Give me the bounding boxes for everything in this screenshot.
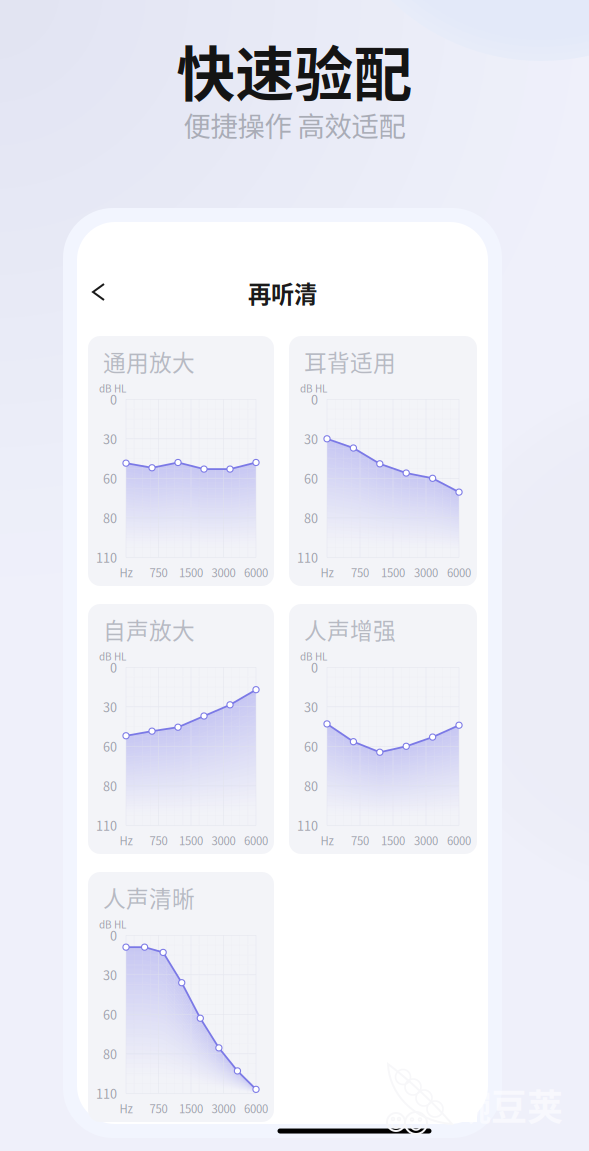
staticText: 再听清 <box>248 276 317 310</box>
staticText: Hz <box>119 832 132 848</box>
staticText: 80 <box>103 1045 117 1063</box>
staticText: 750 <box>351 832 369 848</box>
button[interactable]: 耳背适用 <box>289 336 477 586</box>
button[interactable]: 人声清晰 <box>88 872 274 1122</box>
staticText: 60 <box>103 737 117 755</box>
staticText: dB HL <box>300 649 327 663</box>
button[interactable]: 自声放大 <box>88 604 274 854</box>
staticText: 1500 <box>381 564 405 580</box>
staticText: 6000 <box>244 832 268 848</box>
staticText: 6000 <box>447 832 471 848</box>
staticText: 3000 <box>414 832 438 848</box>
staticText: 3000 <box>211 832 235 848</box>
staticText: 60 <box>304 469 318 487</box>
staticText: 1500 <box>179 832 203 848</box>
staticText: dB HL <box>99 381 126 395</box>
staticText: 自声放大 <box>103 613 195 646</box>
staticText: 30 <box>304 430 318 448</box>
staticText: 0 <box>311 658 318 676</box>
staticText: 80 <box>304 777 318 795</box>
button[interactable]: Back <box>91 276 125 310</box>
staticText: 耳背适用 <box>304 345 396 378</box>
staticText: 750 <box>149 832 167 848</box>
staticText: 快速验配 <box>176 28 412 113</box>
staticText: 1500 <box>179 1100 203 1116</box>
staticText: 110 <box>297 816 318 834</box>
staticText: 豌豆荚 <box>455 1079 563 1131</box>
staticText: 80 <box>103 777 117 795</box>
staticText: 1500 <box>381 832 405 848</box>
staticText: 3000 <box>211 564 235 580</box>
staticText: dB HL <box>99 917 126 931</box>
staticText: 通用放大 <box>103 345 195 378</box>
staticText: 人声清晰 <box>103 881 195 914</box>
staticText: dB HL <box>300 381 327 395</box>
staticText: 人声增强 <box>304 613 396 646</box>
staticText: Hz <box>119 564 132 580</box>
staticText: 750 <box>149 564 167 580</box>
staticText: dB HL <box>99 649 126 663</box>
staticText: Hz <box>320 564 333 580</box>
staticText: 30 <box>103 698 117 716</box>
staticText: 80 <box>103 509 117 527</box>
staticText: 0 <box>110 926 117 944</box>
staticText: 110 <box>297 548 318 566</box>
staticText: 6000 <box>244 1100 268 1116</box>
staticText: 30 <box>103 430 117 448</box>
staticText: 1500 <box>179 564 203 580</box>
staticText: 3000 <box>414 564 438 580</box>
staticText: 便捷操作 高效适配 <box>183 105 405 145</box>
staticText: 0 <box>110 390 117 408</box>
staticText: 60 <box>304 737 318 755</box>
staticText: Hz <box>320 832 333 848</box>
staticText: 60 <box>103 469 117 487</box>
staticText: 60 <box>103 1005 117 1023</box>
staticText: 30 <box>304 698 318 716</box>
staticText: 0 <box>110 658 117 676</box>
staticText: Hz <box>119 1100 132 1116</box>
staticText: 3000 <box>211 1100 235 1116</box>
staticText: 30 <box>103 966 117 984</box>
staticText: 110 <box>96 548 117 566</box>
staticText: 80 <box>304 509 318 527</box>
staticText: 110 <box>96 1084 117 1102</box>
staticText: 6000 <box>447 564 471 580</box>
staticText: 6000 <box>244 564 268 580</box>
staticText: 110 <box>96 816 117 834</box>
button[interactable]: 人声增强 <box>289 604 477 854</box>
staticText: 750 <box>351 564 369 580</box>
button[interactable]: 通用放大 <box>88 336 274 586</box>
staticText: 0 <box>311 390 318 408</box>
staticText: 750 <box>149 1100 167 1116</box>
